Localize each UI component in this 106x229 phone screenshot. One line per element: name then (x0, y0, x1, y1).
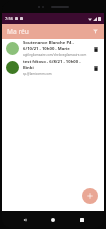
staticText: Soutenance Blanche P4 - (23, 40, 74, 46)
button[interactable]: Back (19, 214, 31, 226)
button[interactable]: Recent apps (76, 214, 88, 226)
staticText: agitlegilamaaire.com/chelovegilamaaire.c… (23, 53, 87, 57)
button[interactable]: Delete (91, 63, 101, 73)
staticText: Binbi (23, 65, 34, 71)
button[interactable]: Soutenance Blanche P4 - (2, 39, 104, 58)
staticText: Ma réu (7, 27, 29, 36)
button[interactable]: Filter (90, 26, 101, 37)
button[interactable]: test fdtoso - 6/8/21 - 10h00 - (2, 58, 104, 77)
button[interactable]: Home (47, 214, 59, 226)
staticText: sp.@lamicomm.com (23, 72, 52, 76)
staticText: test fdtoso - 6/8/21 - 10h00 - (23, 59, 81, 65)
staticText: 6/10/21 - 10h00 - Marie (23, 46, 70, 52)
button[interactable]: Add meeting (82, 188, 98, 204)
staticText: 7:56 (5, 16, 13, 21)
button[interactable]: Delete (91, 44, 101, 54)
